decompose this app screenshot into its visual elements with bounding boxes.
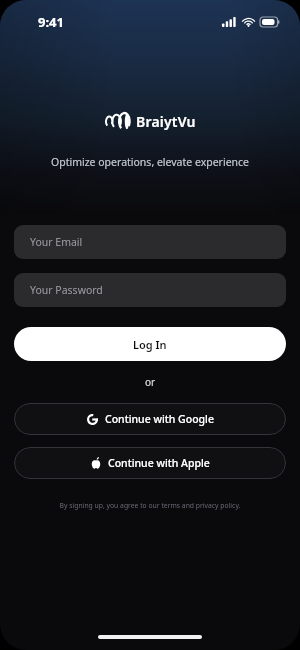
other: BraiytVu logo — [104, 113, 130, 130]
staticText: 9:41 — [38, 13, 64, 31]
staticText: Log In — [133, 337, 167, 352]
staticText: Optimize operations, elevate experience — [0, 155, 300, 169]
staticText: Your Password — [30, 283, 103, 297]
staticText: Your Email — [30, 235, 83, 249]
button[interactable]: Log In — [14, 327, 286, 361]
staticText: or — [0, 375, 300, 389]
staticText: BraiytVu — [136, 112, 196, 131]
button[interactable]: Your Email — [14, 225, 286, 259]
button[interactable]: Continue with Apple — [14, 447, 286, 479]
button[interactable]: Continue with Google — [14, 403, 286, 435]
staticText: Continue with Google — [105, 412, 214, 426]
button[interactable]: Your Password — [14, 273, 286, 307]
staticText: By signing up, you agree to our terms an… — [0, 501, 300, 510]
staticText: Continue with Apple — [108, 456, 210, 470]
